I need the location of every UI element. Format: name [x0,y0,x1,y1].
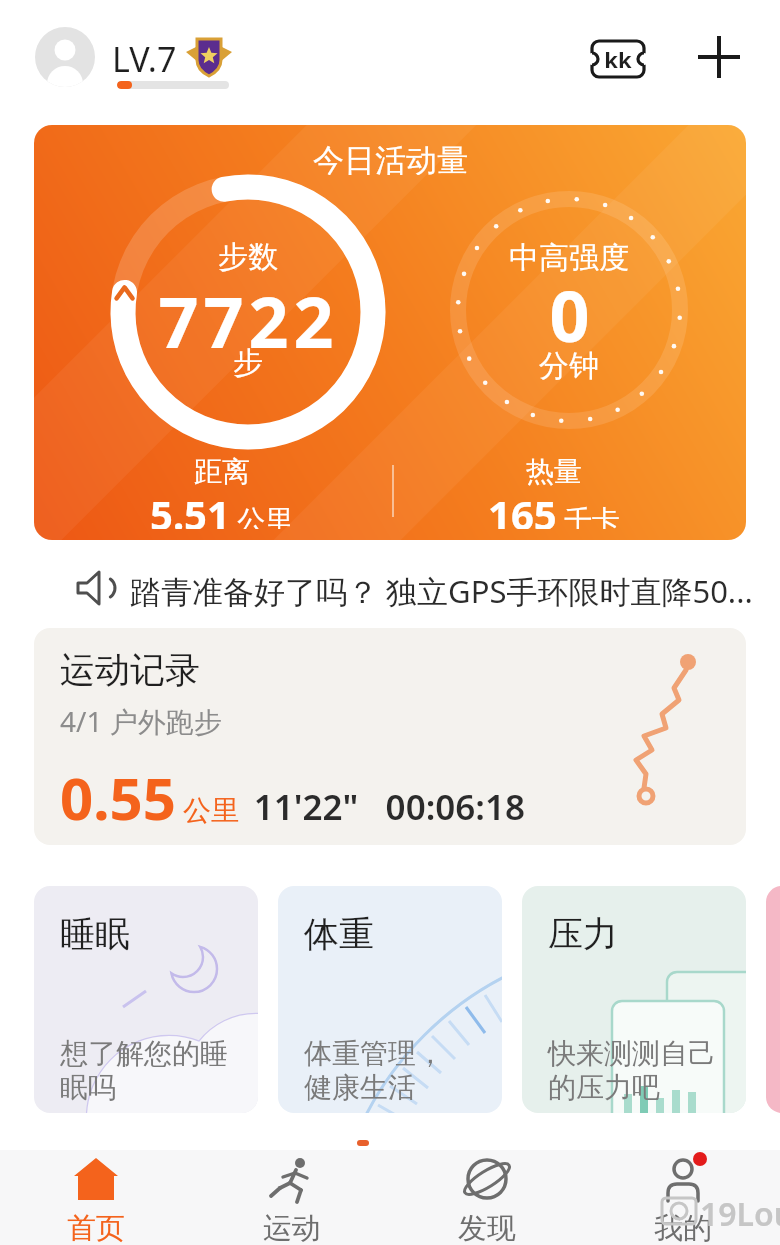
button[interactable]: 首页 [34,1152,158,1244]
staticText: 踏青准备好了吗？ 独立GPS手环限时直降50... [130,570,753,612]
staticText: 压力 [548,912,618,956]
staticText: 步 [233,344,263,380]
staticText: 今日活动量 [313,141,468,175]
button[interactable] [766,886,780,1113]
button[interactable]: kk [588,38,648,80]
button[interactable] [35,27,95,87]
button[interactable]: 发现 [425,1152,549,1244]
button[interactable]: 今日活动量 [34,125,746,540]
staticText: 距离 [194,454,250,486]
button[interactable]: 踏青准备好了吗？ 独立GPS手环限时直降50... [0,556,780,620]
button[interactable]: 体重 [278,886,502,1113]
staticText: 19Lou [700,1192,780,1236]
button[interactable]: 运动记录 [34,628,746,845]
staticText: 0.55 公里 11'22" 00:06:18 [60,758,526,828]
staticText: 中高强度 [509,239,629,275]
staticText: 想了解您的睡 眠吗 [60,1036,228,1106]
staticText: 我的 [654,1210,712,1244]
staticText: 睡眠 [60,912,130,956]
staticText: 快来测测自己 的压力吧 [548,1036,716,1106]
staticText: 7722 [158,273,339,349]
staticText: LV.7 [112,36,177,82]
staticText: 0 [549,267,590,343]
staticText: 运动记录 [60,648,200,692]
button[interactable]: 运动 [230,1152,354,1244]
button[interactable]: 压力 [522,886,746,1113]
staticText: kk [604,44,632,74]
staticText: 4/1 户外跑步 [60,702,222,740]
staticText: 5.51 公里 [150,487,294,529]
staticText: 运动 [263,1210,321,1244]
staticText: 首页 [67,1210,125,1244]
staticText: 发现 [458,1210,516,1244]
button[interactable]: 睡眠 [34,886,258,1113]
staticText: 热量 [526,454,582,486]
staticText: 步数 [218,238,278,274]
staticText: 体重 [304,912,374,956]
staticText: 体重管理， 健康生活 [304,1036,444,1106]
button[interactable]: 我的 [621,1152,745,1244]
button[interactable] [695,33,743,81]
staticText: 分钟 [539,347,599,383]
staticText: 165 千卡 [488,487,620,529]
